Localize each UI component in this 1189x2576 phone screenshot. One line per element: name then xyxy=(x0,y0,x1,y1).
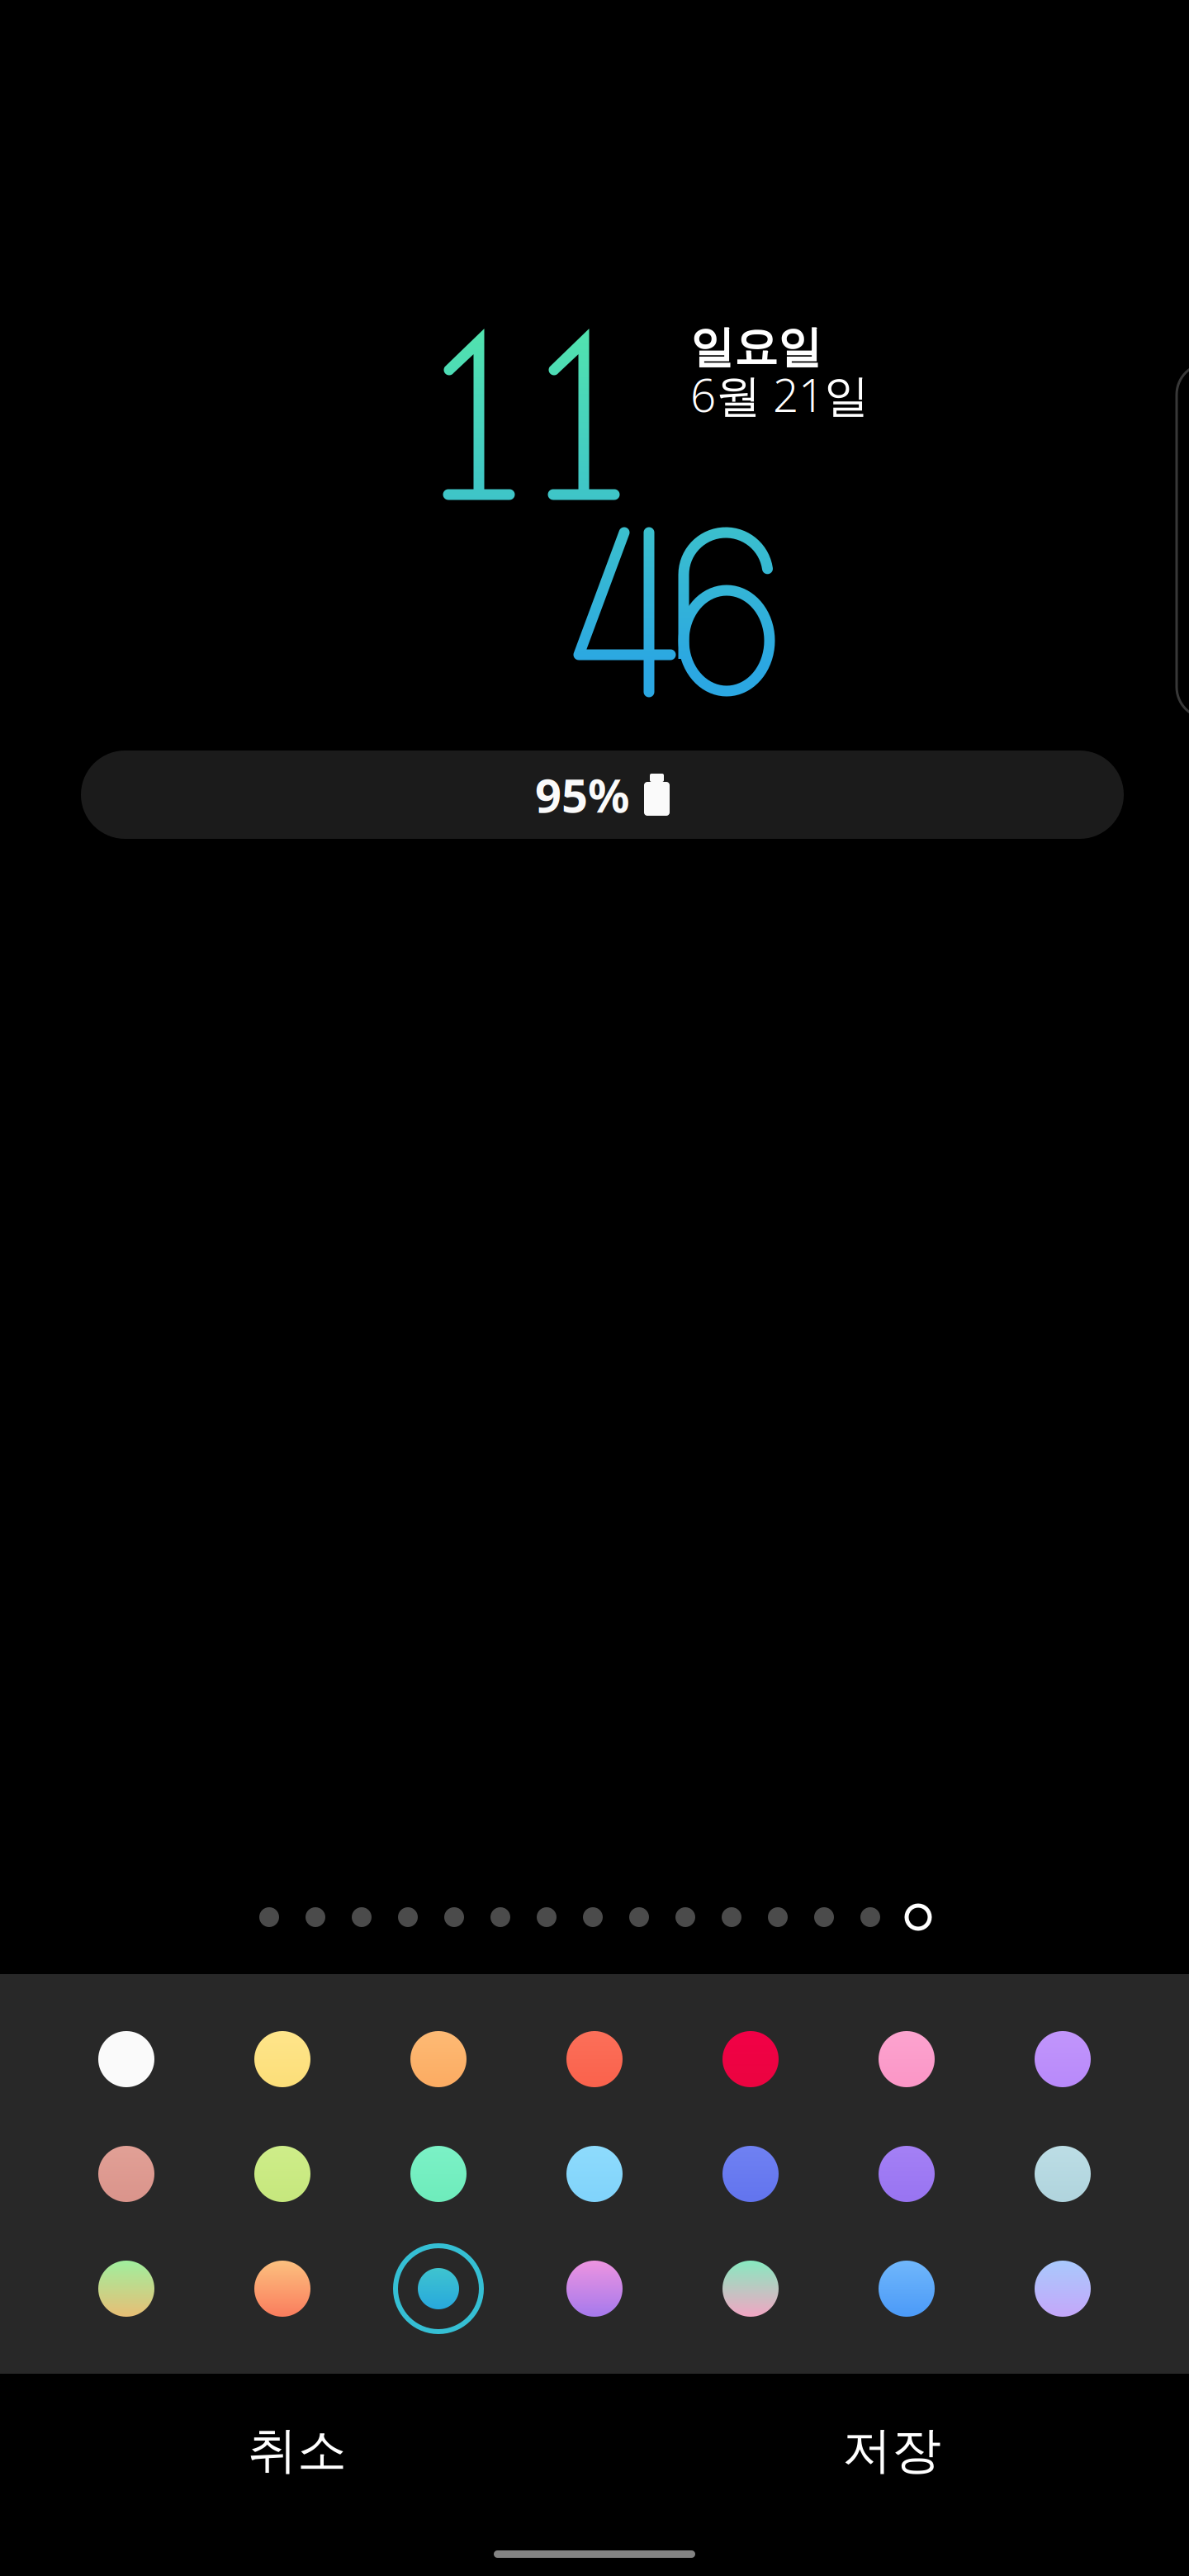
button[interactable]: Colour swatch xyxy=(549,2240,640,2337)
button[interactable]: Colour swatch xyxy=(237,2240,328,2337)
button[interactable]: 취소 xyxy=(0,2374,594,2527)
button[interactable]: Colour swatch xyxy=(1017,2125,1108,2223)
button[interactable]: Colour swatch xyxy=(1017,2240,1108,2337)
button[interactable]: Colour swatch xyxy=(549,2010,640,2108)
button[interactable]: Colour swatch xyxy=(81,2010,172,2108)
button[interactable]: Colour swatch xyxy=(861,2125,952,2223)
button[interactable]: Colour swatch xyxy=(393,2010,484,2108)
button[interactable]: Colour swatch xyxy=(237,2125,328,2223)
staticText: 저장 xyxy=(842,2420,941,2481)
button[interactable]: Colour swatch xyxy=(705,2240,796,2337)
button[interactable]: Colour swatch xyxy=(393,2125,484,2223)
button[interactable]: Colour swatch xyxy=(1017,2010,1108,2108)
button[interactable]: Colour swatch xyxy=(237,2010,328,2108)
button[interactable]: Battery 95 percent xyxy=(81,751,1124,839)
button[interactable]: Colour swatch xyxy=(81,2125,172,2223)
button[interactable]: 저장 xyxy=(594,2374,1189,2527)
staticText: 95% xyxy=(535,764,630,825)
staticText: 취소 xyxy=(248,2420,347,2481)
button[interactable]: Colour swatch xyxy=(393,2240,484,2337)
button[interactable]: Colour swatch xyxy=(549,2125,640,2223)
button[interactable]: Colour swatch xyxy=(81,2240,172,2337)
button[interactable]: Colour swatch xyxy=(705,2125,796,2223)
button[interactable]: Colour swatch xyxy=(861,2010,952,2108)
staticText: 6월 21일 xyxy=(690,365,869,424)
button[interactable]: Colour swatch xyxy=(861,2240,952,2337)
staticText: 일요일 xyxy=(690,320,822,374)
button[interactable]: Colour swatch xyxy=(705,2010,796,2108)
